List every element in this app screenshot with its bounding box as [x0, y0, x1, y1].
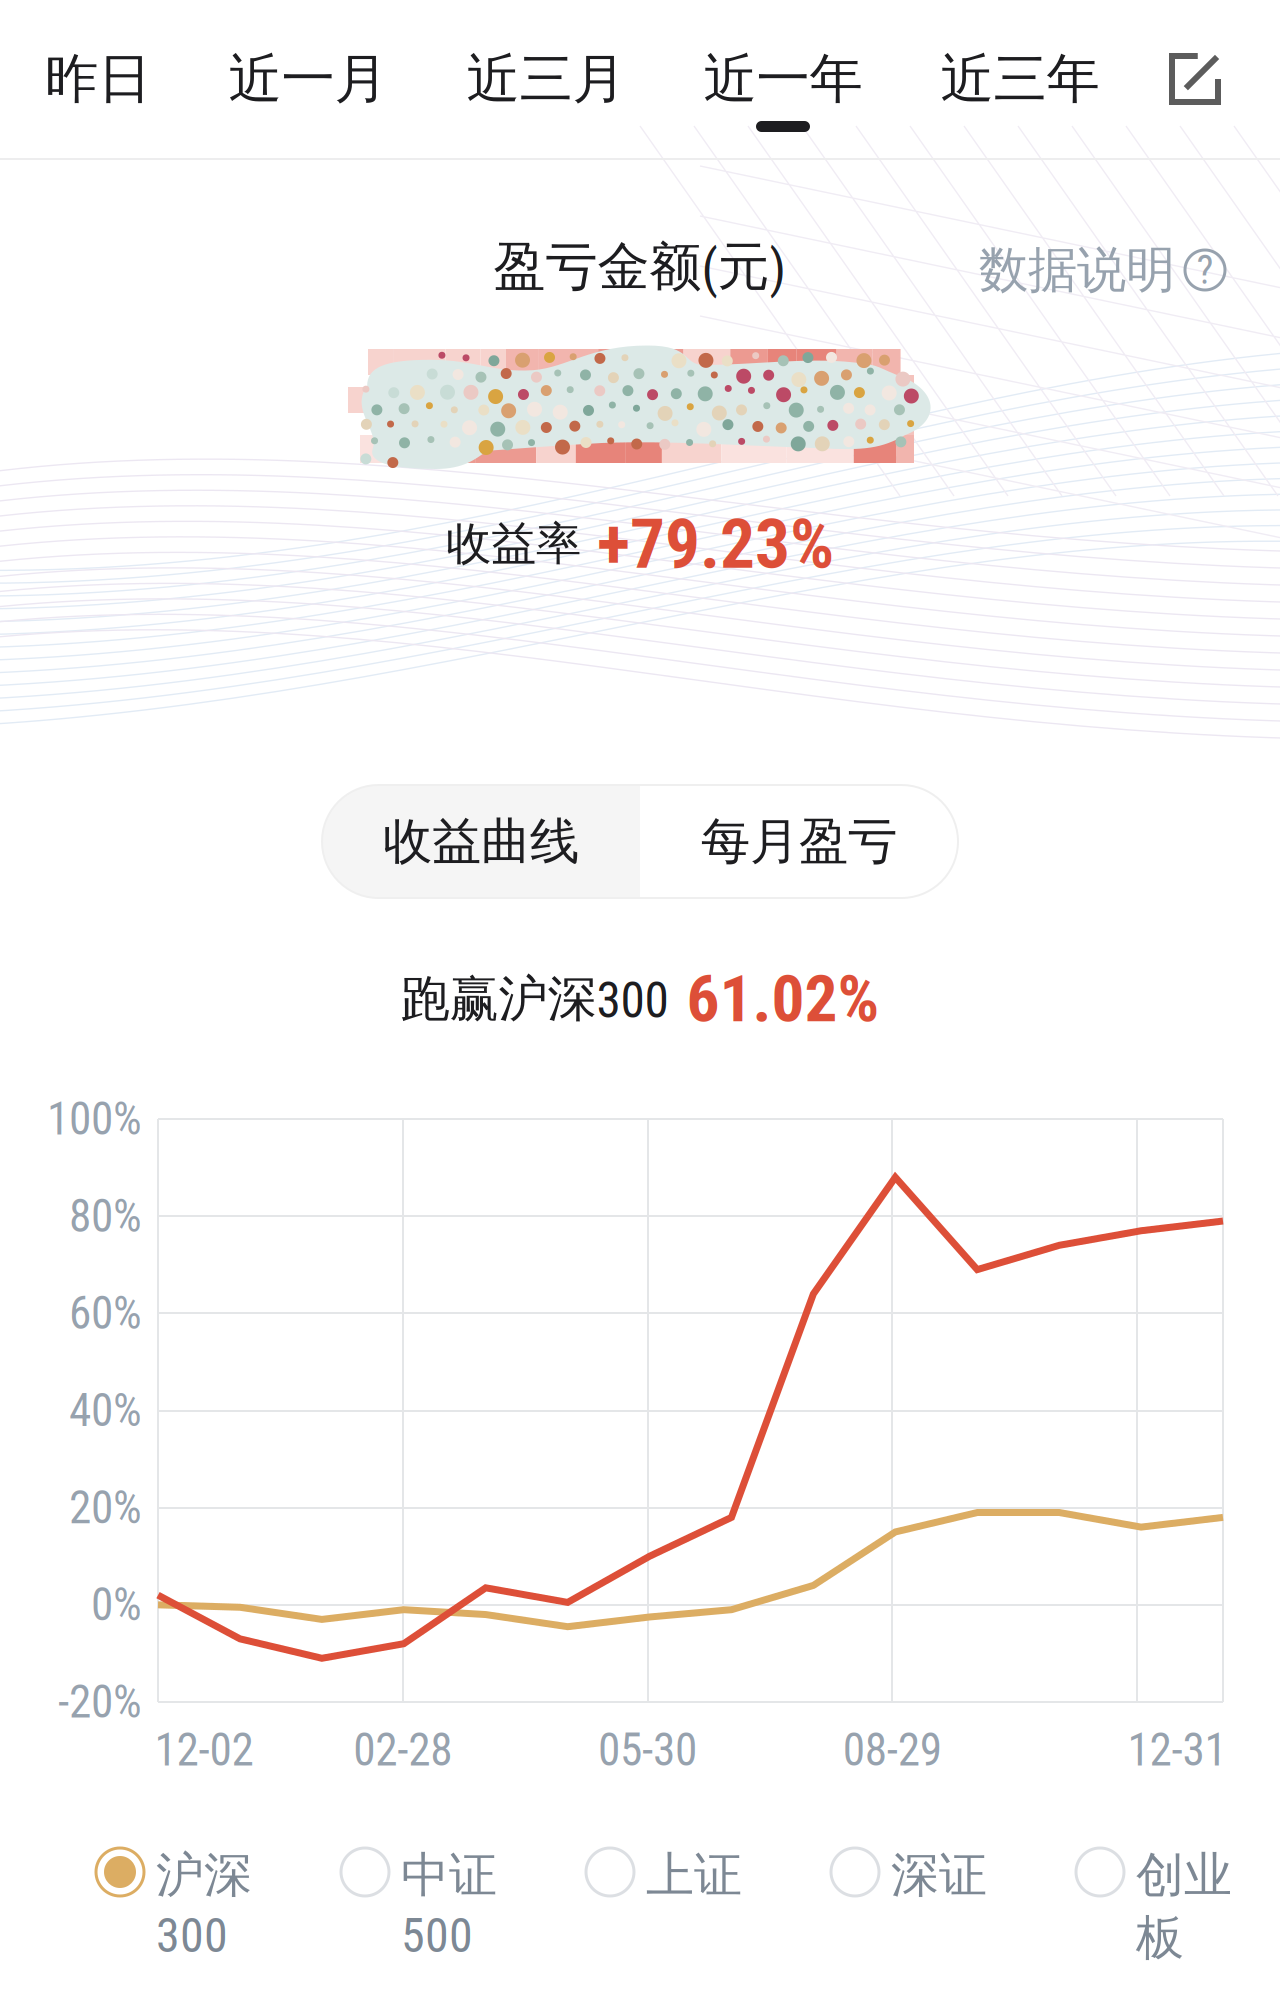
staticText: 近三年: [940, 45, 1099, 113]
button[interactable]: 近三月: [428, 0, 664, 158]
staticText: 数据说明: [979, 239, 1175, 301]
staticText: 每月盈亏: [701, 810, 897, 872]
button[interactable]: 近一月: [190, 0, 426, 158]
button[interactable]: 数据说明: [925, 240, 1225, 300]
staticText: 板: [1136, 1907, 1184, 1968]
staticText: 02-28: [353, 1723, 452, 1776]
staticText: 12-31: [1127, 1723, 1226, 1776]
button[interactable]: 深证: [831, 1845, 1076, 1995]
button[interactable]: 收益曲线: [322, 785, 640, 898]
staticText: 40%: [69, 1384, 142, 1437]
staticText: 80%: [69, 1190, 142, 1243]
staticText: 沪深: [156, 1845, 252, 1905]
button[interactable]: 近一年: [665, 0, 901, 158]
button[interactable]: 创业: [1076, 1845, 1280, 1995]
staticText: 0%: [91, 1578, 142, 1631]
button[interactable]: 近三年: [902, 0, 1138, 158]
staticText: 盈亏金额(元): [493, 234, 786, 300]
staticText: 收益曲线: [383, 810, 579, 872]
staticText: 中证: [401, 1845, 497, 1905]
staticText: 100%: [47, 1092, 142, 1145]
staticText: 500: [401, 1907, 473, 1964]
staticText: 深证: [891, 1845, 987, 1905]
button[interactable]: 上证: [586, 1845, 831, 1995]
staticText: 收益率: [446, 515, 581, 572]
staticText: 08-29: [843, 1723, 942, 1776]
staticText: 上证: [646, 1845, 742, 1905]
staticText: 61.02%: [686, 961, 879, 1037]
button[interactable]: 编辑自选: [1135, 0, 1255, 158]
staticText: 近三月: [466, 45, 625, 113]
staticText: 60%: [69, 1287, 142, 1340]
button[interactable]: 每月盈亏: [640, 785, 958, 898]
staticText: +79.23%: [597, 503, 834, 585]
staticText: -20%: [58, 1675, 142, 1728]
staticText: 昨日: [45, 45, 151, 113]
staticText: 近一月: [228, 45, 387, 113]
staticText: 20%: [69, 1481, 142, 1534]
staticText: 05-30: [598, 1723, 697, 1776]
staticText: 近一年: [703, 45, 862, 113]
button[interactable]: 昨日: [0, 0, 216, 158]
staticText: 12-02: [154, 1723, 253, 1776]
staticText: ?: [1196, 247, 1213, 293]
staticText: 300: [156, 1907, 228, 1964]
button[interactable]: 中证: [341, 1845, 586, 1995]
staticText: 创业: [1136, 1845, 1232, 1905]
staticText: 跑赢沪深300: [400, 968, 668, 1030]
button[interactable]: 沪深: [96, 1845, 341, 1995]
